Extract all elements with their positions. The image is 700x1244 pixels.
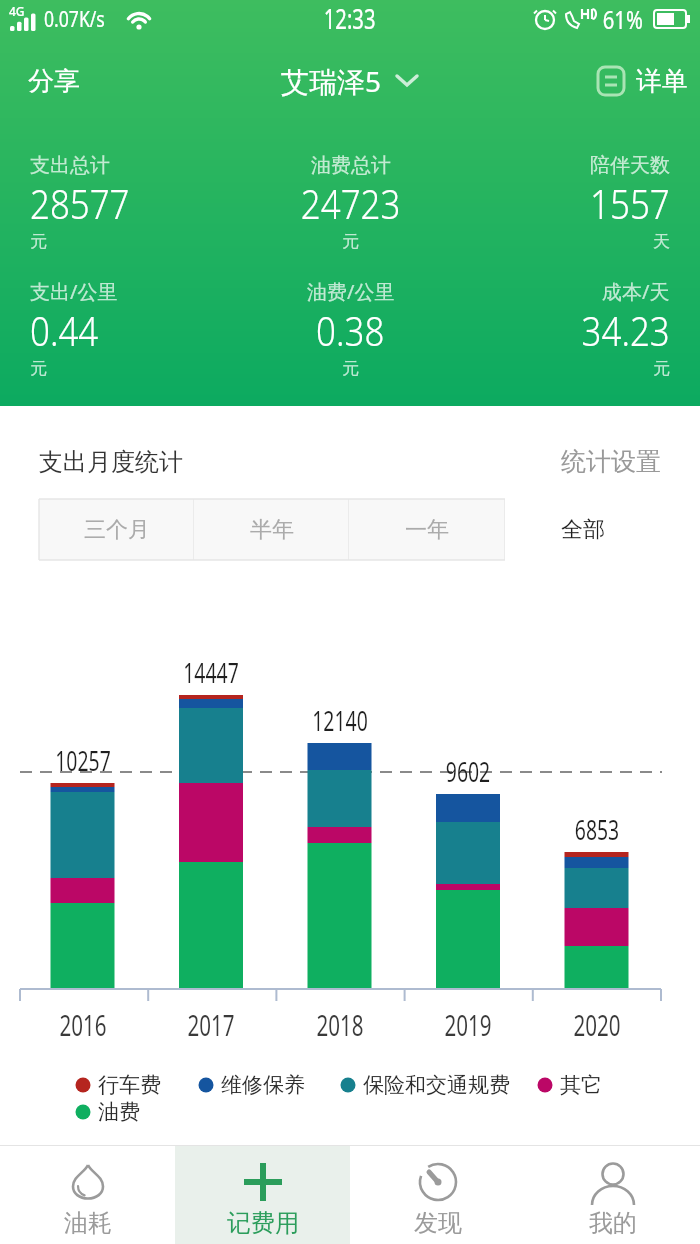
staticText: 14447 (161, 654, 261, 691)
staticText: 2016 (33, 1005, 133, 1044)
staticText: 一年 (405, 516, 449, 544)
staticText: 元 (30, 231, 47, 252)
staticText: 4G (9, 3, 25, 19)
staticText: 保险和交通规费 (363, 1072, 510, 1098)
staticText: 支出/公里 (30, 278, 118, 305)
staticText: 元 (342, 231, 359, 252)
staticText: 12:33 (324, 0, 376, 36)
staticText: 成本/天 (602, 278, 670, 305)
staticText: 统计设置 (561, 446, 661, 477)
staticText: 其它 (560, 1072, 602, 1098)
staticText: 9602 (418, 753, 518, 790)
staticText: 28577 (30, 175, 130, 231)
staticText: 艾瑞泽5 (281, 62, 382, 100)
staticText: 油费 (98, 1099, 140, 1125)
staticText: 61% (603, 1, 643, 36)
staticText: 行车费 (98, 1072, 161, 1098)
button[interactable]: 发现 (350, 1146, 525, 1244)
staticText: 24723 (301, 175, 401, 231)
staticText: 天 (653, 231, 670, 252)
staticText: 记费用 (227, 1208, 299, 1238)
staticText: 半年 (250, 516, 294, 544)
button[interactable]: 全部 (505, 499, 661, 560)
button[interactable]: 详单 (596, 65, 700, 98)
button[interactable]: 分享 (0, 57, 90, 106)
staticText: 元 (342, 358, 359, 379)
staticText: 2017 (161, 1005, 261, 1044)
button[interactable]: 半年 (194, 499, 349, 560)
staticText: 6853 (547, 811, 647, 848)
staticText: 2019 (418, 1005, 518, 1044)
button[interactable]: 三个月 (39, 499, 194, 560)
staticText: 2020 (547, 1005, 647, 1044)
staticText: 0.44 (30, 302, 99, 358)
staticText: 元 (30, 358, 47, 379)
button[interactable]: 艾瑞泽5 (281, 62, 420, 100)
staticText: 34.23 (582, 302, 670, 358)
staticText: 10257 (33, 742, 133, 779)
staticText: 维修保养 (221, 1072, 305, 1098)
staticText: 三个月 (84, 516, 150, 544)
staticText: 1557 (590, 175, 670, 231)
staticText: 元 (653, 358, 670, 379)
staticText: 油费总计 (311, 153, 391, 178)
button[interactable]: 一年 (349, 499, 505, 560)
staticText: 详单 (636, 65, 688, 98)
staticText: 陪伴天数 (590, 153, 670, 178)
button[interactable]: 记费用 (175, 1146, 350, 1244)
staticText: 2018 (290, 1005, 390, 1044)
staticText: 分享 (28, 65, 80, 98)
staticText: 支出月度统计 (39, 447, 183, 477)
button[interactable]: 我的 (525, 1146, 700, 1244)
staticText: 我的 (589, 1208, 637, 1238)
staticText: 油费/公里 (307, 278, 395, 305)
staticText: 发现 (414, 1208, 462, 1238)
staticText: 0.38 (316, 302, 385, 358)
staticText: 全部 (561, 516, 605, 544)
staticText: 支出总计 (30, 153, 110, 178)
staticText: 0.07K/s (44, 3, 105, 33)
staticText: 12140 (290, 702, 390, 739)
staticText: 油耗 (64, 1208, 112, 1238)
button[interactable]: 统计设置 (561, 446, 661, 477)
button[interactable]: 油耗 (0, 1146, 175, 1244)
